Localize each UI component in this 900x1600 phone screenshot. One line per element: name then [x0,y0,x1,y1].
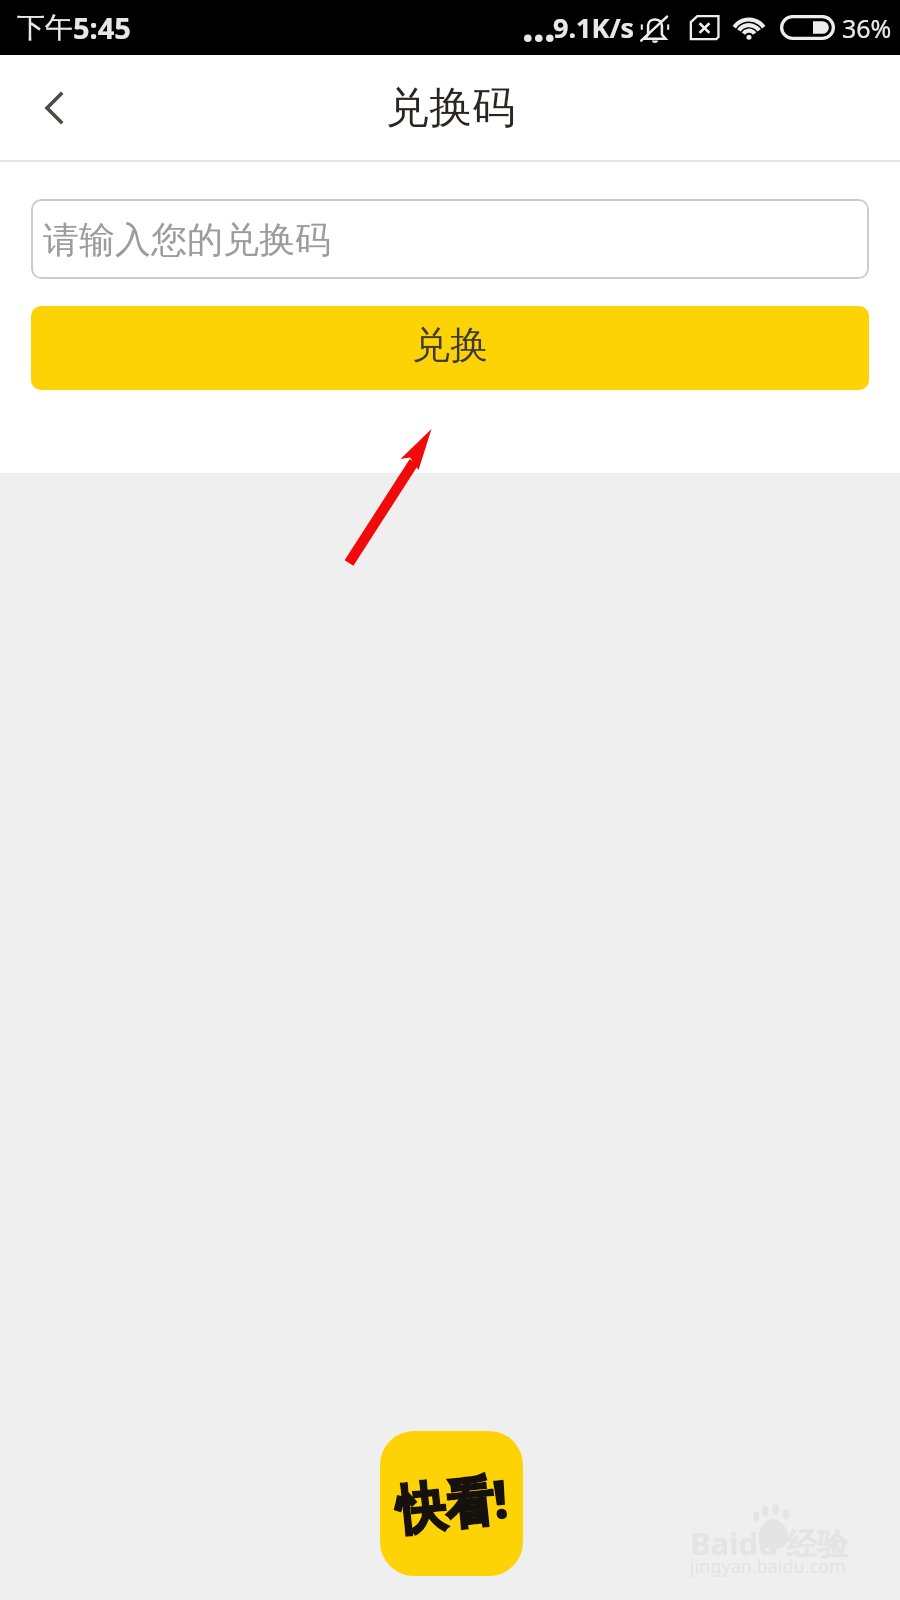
staticText: 兑换 [412,321,488,369]
staticText: 5:45 [73,8,131,47]
staticText: 9.1K/s [553,9,635,46]
staticText: 快看! [392,1461,512,1544]
button[interactable]: 兑换 [31,306,869,390]
staticText: jingyan.baidu.com [690,1554,846,1579]
staticText: 下午 [17,10,73,45]
staticText: 36% [842,11,892,45]
button[interactable]: 请输入您的兑换码 [31,199,869,279]
staticText: 快看! [393,1461,512,1545]
staticText: Baidu 经验 [690,1522,849,1564]
staticText: 请输入您的兑换码 [43,217,331,262]
button[interactable]: Back [0,55,106,160]
staticText: 兑换码 [386,81,515,135]
button[interactable]: Kuaikan app icon [380,1431,523,1576]
